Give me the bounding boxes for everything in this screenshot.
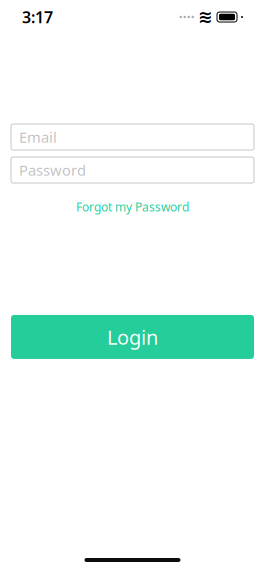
- staticText: ≋: [198, 7, 213, 27]
- button[interactable]: Login: [11, 315, 254, 359]
- staticText: 3:17: [22, 6, 53, 28]
- staticText: Login: [107, 324, 158, 350]
- staticText: Forgot my Password: [76, 199, 189, 215]
- button[interactable]: Forgot my Password: [66, 193, 199, 221]
- staticText: Email: [19, 127, 57, 147]
- staticText: Password: [19, 160, 86, 180]
